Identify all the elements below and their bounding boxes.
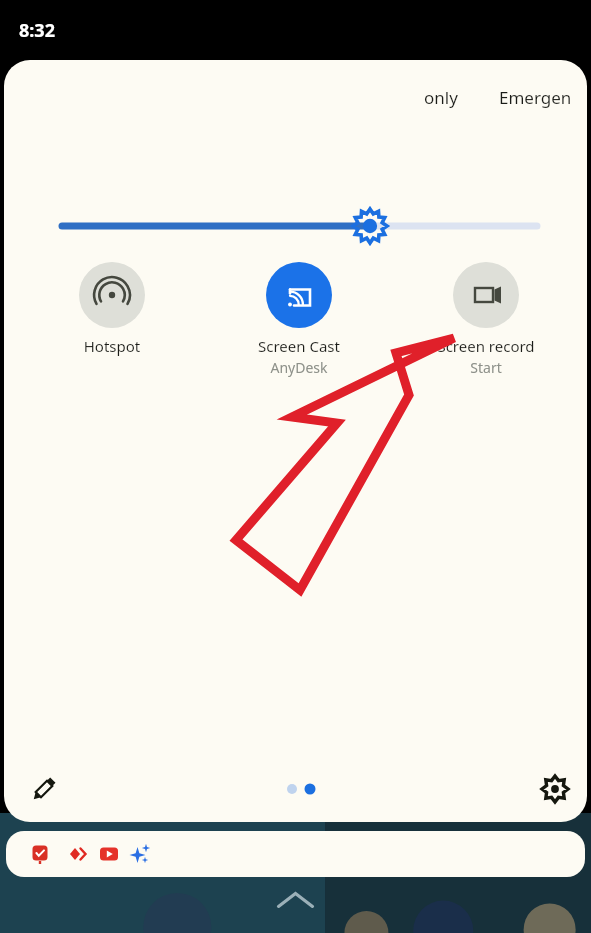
button[interactable]: Brightness xyxy=(54,198,541,254)
staticText: Screen Cast xyxy=(233,336,365,356)
staticText: only xyxy=(424,86,458,109)
button[interactable]: Hotspot xyxy=(46,262,178,356)
button[interactable]: Screen Cast xyxy=(233,262,365,377)
button[interactable]: Screen record xyxy=(420,262,552,377)
staticText: Emergen xyxy=(499,86,572,109)
staticText: AnyDesk xyxy=(233,358,365,377)
staticText: 8:32 xyxy=(19,18,55,43)
staticText: Hotspot xyxy=(46,336,178,356)
button[interactable]: Edit tiles xyxy=(20,765,68,813)
button[interactable]: Notifications xyxy=(6,831,585,877)
button[interactable]: Settings xyxy=(531,765,579,813)
staticText: Screen record xyxy=(420,336,552,356)
staticText: Start xyxy=(420,358,552,377)
